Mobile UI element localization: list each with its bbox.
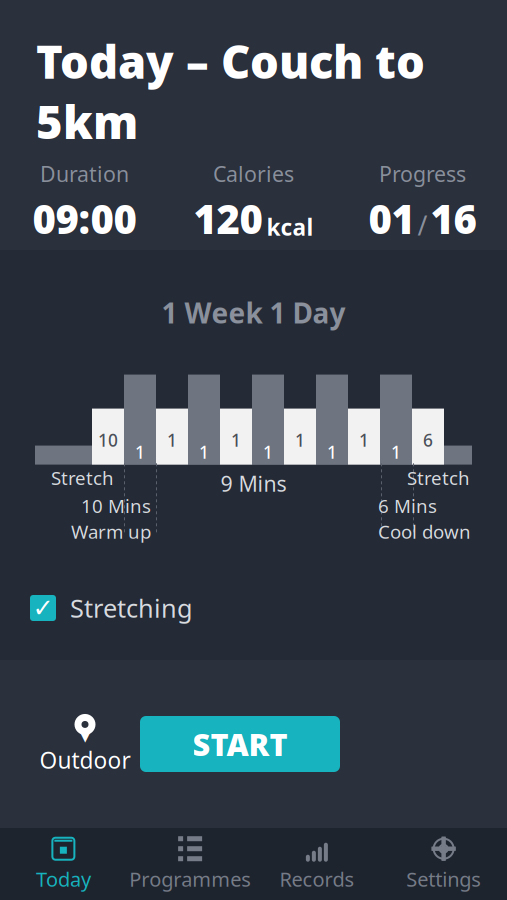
button[interactable]: ▼ [30,706,140,782]
button[interactable]: Records [253,828,380,900]
staticText: 9 Mins [220,469,286,498]
staticText: Stretching [70,591,193,625]
staticText: Programmes [129,866,251,892]
staticText: 1 [135,441,145,464]
staticText: START [192,724,287,764]
staticText: / [417,207,427,243]
staticText: Today – Couch to 5km [36,31,425,151]
staticText: 1 Week 1 Day [161,294,345,331]
staticText: Calories [213,159,294,188]
staticText: ✓ [32,594,53,622]
button[interactable]: START [140,716,340,772]
staticText: 120 [193,192,262,245]
staticText: Records [279,866,354,892]
staticText: Warm up [71,519,151,544]
button[interactable]: Settings [380,828,507,900]
staticText: Cool down [378,519,471,544]
staticText: 10 Mins [81,493,151,518]
staticText: 1 [263,441,273,464]
staticText: 6 Mins [378,493,437,518]
button[interactable]: ✓ [0,586,249,630]
staticText: 01 [368,192,414,245]
staticText: Outdoor [39,745,130,775]
staticText: 1 [167,429,177,452]
staticText: 1 [327,441,337,464]
staticText: Stretch [51,465,114,490]
staticText: Settings [406,866,481,892]
button[interactable]: Programmes [127,828,254,900]
staticText: kcal [266,212,313,242]
staticText: 16 [430,192,476,245]
staticText: Progress [379,159,466,188]
staticText: 1 [391,441,401,464]
staticText: Duration [40,159,129,188]
staticText: 1 [199,441,209,464]
staticText: 1 [231,429,241,452]
staticText: 1 [295,429,305,452]
staticText: Today [36,866,91,892]
staticText: 6 [423,429,433,452]
staticText: 09:00 [32,192,136,245]
staticText: 1 [359,429,369,452]
staticText: Stretch [407,465,470,490]
button[interactable]: Today [0,828,127,900]
staticText: ▼ [78,725,91,744]
staticText: 10 [98,429,118,452]
